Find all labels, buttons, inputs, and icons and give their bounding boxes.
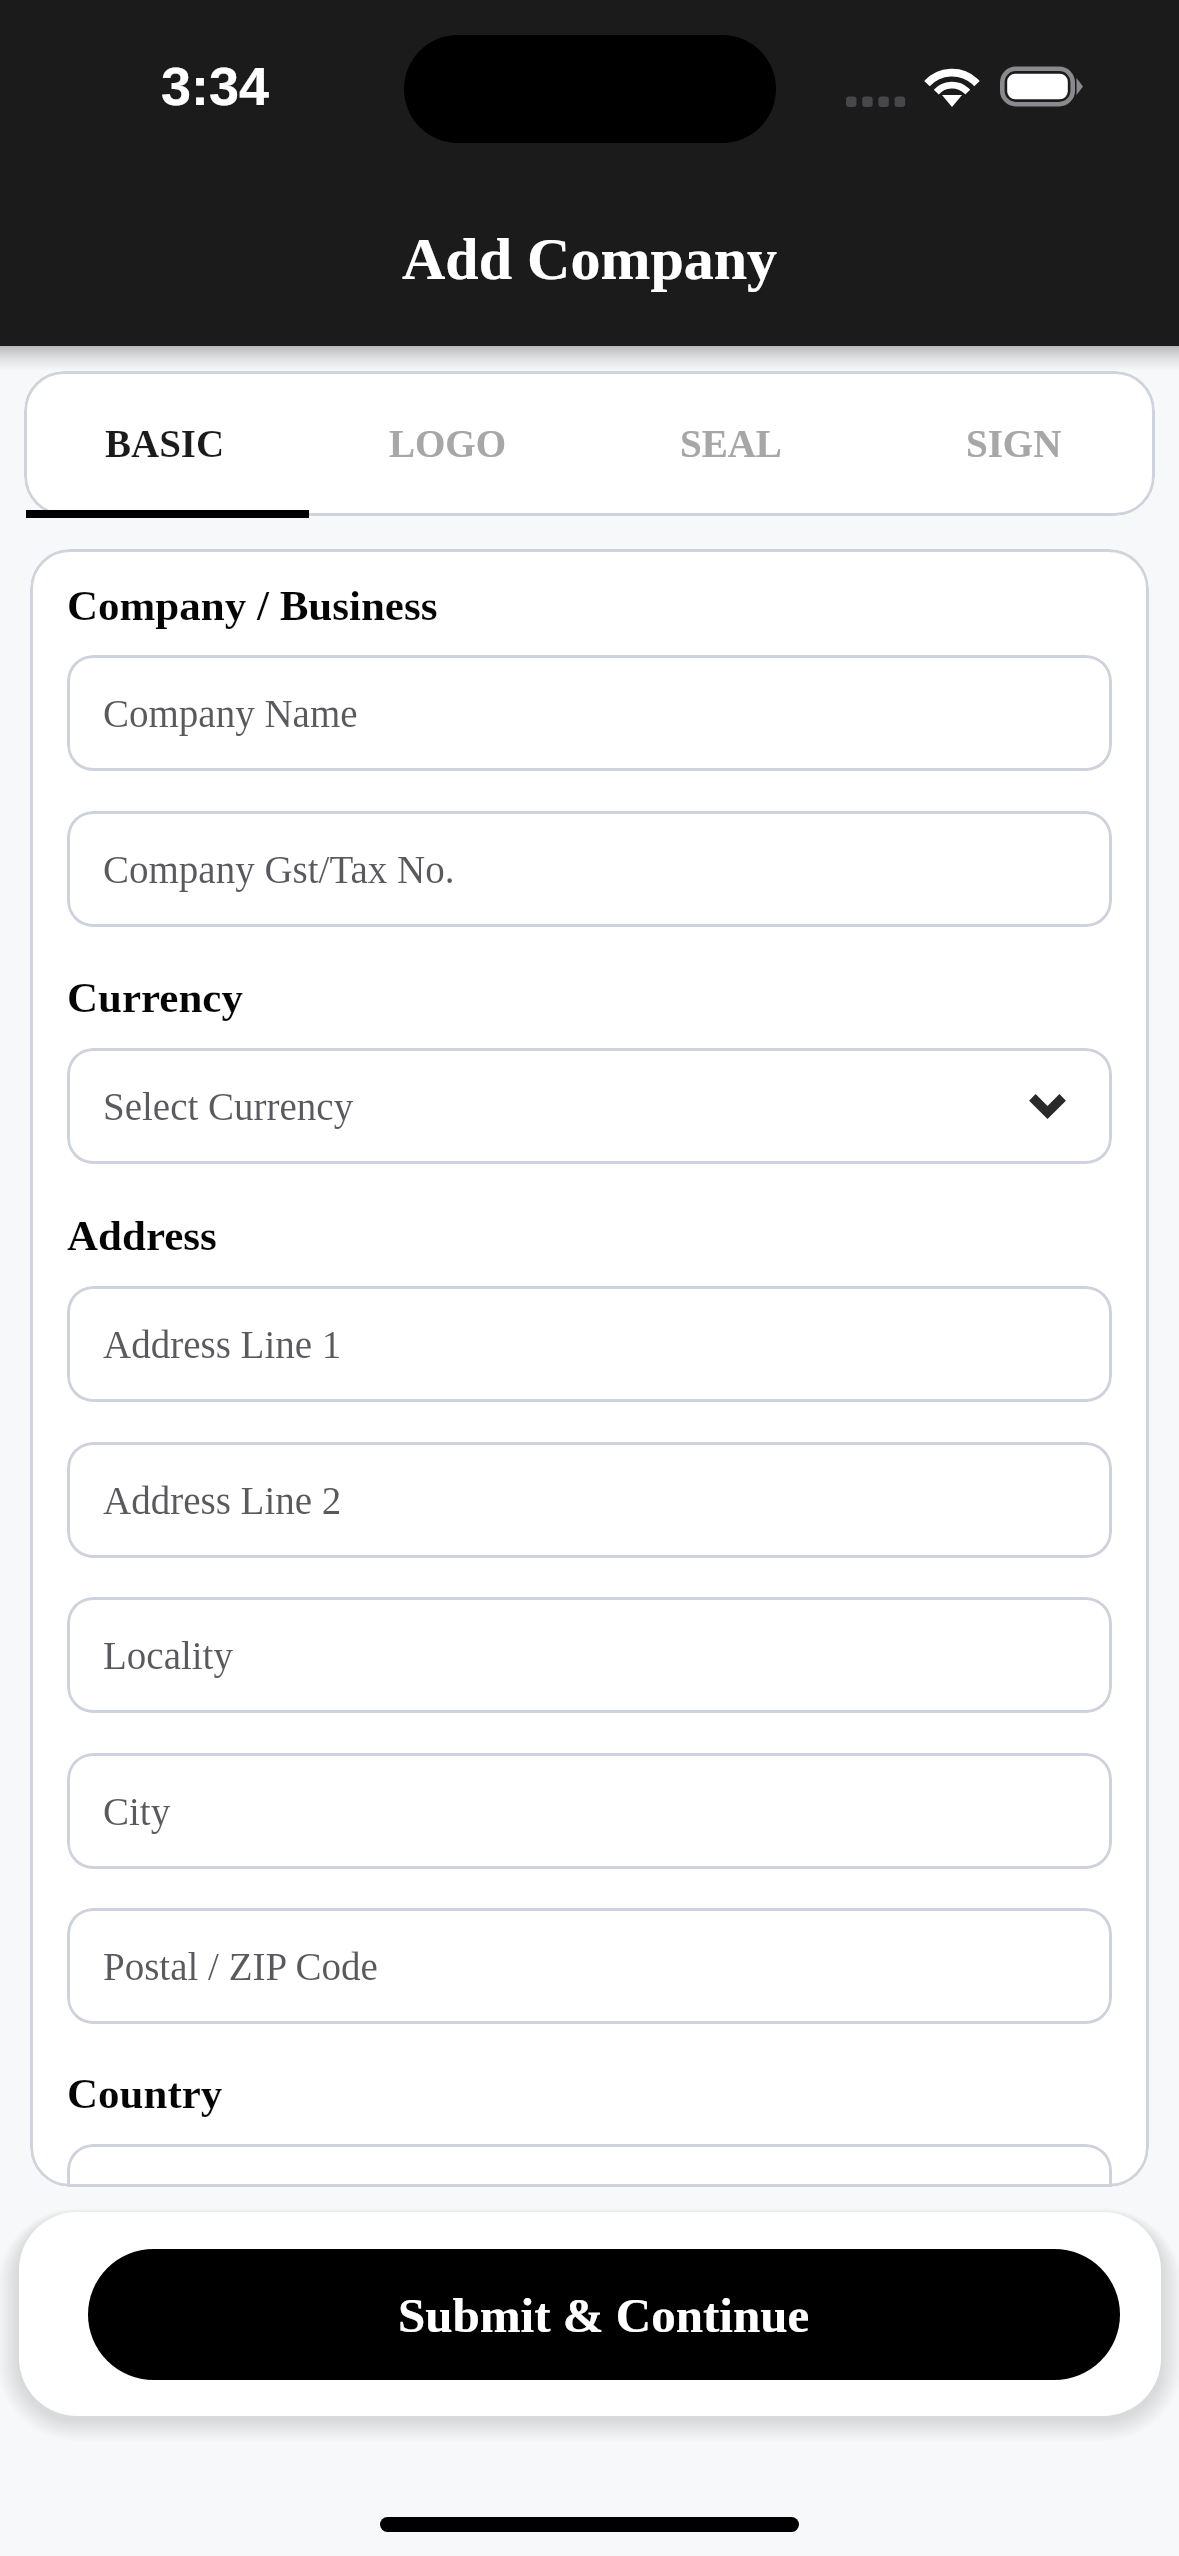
- button[interactable]: Select Currency: [67, 1048, 1112, 1164]
- button[interactable]: Locality: [67, 1597, 1112, 1713]
- staticText: Currency: [67, 974, 243, 1022]
- staticText: Company Name: [103, 692, 358, 735]
- staticText: SEAL: [680, 422, 782, 465]
- button[interactable]: Address Line 2: [67, 1442, 1112, 1558]
- button[interactable]: SEAL: [589, 371, 872, 516]
- button[interactable]: Company Name: [67, 655, 1112, 771]
- staticText: Add Company: [402, 226, 778, 292]
- staticText: Locality: [103, 1634, 233, 1677]
- staticText: Select Country: [103, 2181, 336, 2187]
- staticText: BASIC: [105, 422, 225, 465]
- button[interactable]: Company Gst/Tax No.: [67, 811, 1112, 927]
- button[interactable]: SIGN: [872, 371, 1155, 516]
- staticText: Company Gst/Tax No.: [103, 848, 455, 891]
- button[interactable]: Select Country: [67, 2144, 1112, 2187]
- button[interactable]: BASIC: [24, 371, 306, 516]
- staticText: Address Line 2: [103, 1479, 342, 1522]
- button[interactable]: LOGO: [306, 371, 589, 516]
- staticText: Postal / ZIP Code: [103, 1945, 378, 1988]
- other: Open dropdown: [1031, 1096, 1064, 1117]
- staticText: City: [103, 1790, 171, 1833]
- staticText: Submit & Continue: [398, 2288, 810, 2342]
- button[interactable]: Submit & Continue: [88, 2249, 1120, 2380]
- staticText: SIGN: [966, 422, 1062, 465]
- staticText: Select Currency: [103, 1085, 354, 1128]
- button[interactable]: City: [67, 1753, 1112, 1869]
- staticText: Country: [67, 2070, 223, 2118]
- button[interactable]: Postal / ZIP Code: [67, 1908, 1112, 2024]
- button[interactable]: Address Line 1: [67, 1286, 1112, 1402]
- staticText: Address: [67, 1212, 217, 1260]
- staticText: Company / Business: [67, 582, 438, 630]
- staticText: Address Line 1: [103, 1323, 342, 1366]
- staticText: LOGO: [389, 422, 507, 465]
- staticText: 3:34: [161, 56, 270, 116]
